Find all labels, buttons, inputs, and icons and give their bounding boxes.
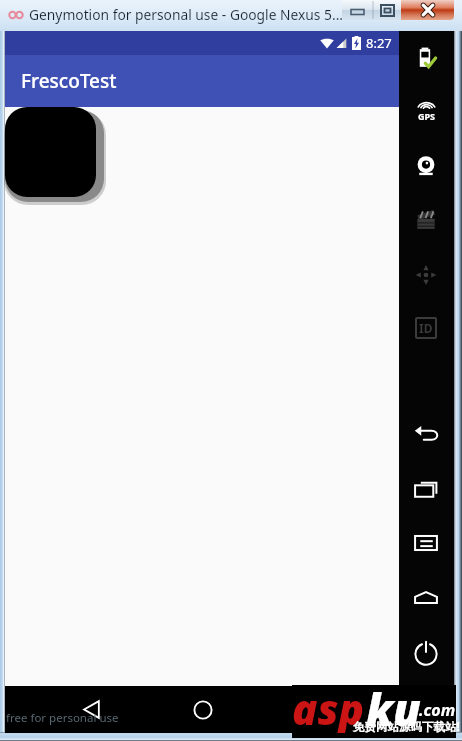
button[interactable]: Power <box>399 626 453 680</box>
staticText: 8:27 <box>366 34 392 52</box>
button[interactable]: Home <box>173 686 233 733</box>
button[interactable]: Camera <box>399 139 453 193</box>
button[interactable]: Minimize <box>342 0 401 20</box>
staticText: 免费网站源码下载站! <box>353 719 460 735</box>
button[interactable]: Recents <box>283 686 343 733</box>
staticText: ID <box>419 320 433 336</box>
button[interactable]: Accelerometer <box>399 248 453 302</box>
button[interactable]: Maximize <box>373 0 401 20</box>
staticText: Genymotion for personal use - Google Nex… <box>29 5 344 24</box>
button[interactable]: Recent apps <box>399 463 453 517</box>
staticText: .com <box>419 699 456 721</box>
button[interactable]: Menu <box>399 516 453 570</box>
button[interactable]: Back <box>61 686 122 733</box>
staticText: ku <box>366 679 421 732</box>
button[interactable]: Screencast <box>399 193 453 247</box>
button[interactable]: Battery <box>399 31 453 85</box>
button[interactable]: GPS <box>399 83 453 137</box>
button[interactable]: Identifiers <box>399 301 453 355</box>
staticText: GPS <box>418 110 436 122</box>
staticText: free for personal use <box>6 710 119 726</box>
button[interactable]: Close <box>401 0 454 20</box>
button[interactable]: Back <box>399 408 453 462</box>
staticText: asp <box>292 680 365 733</box>
staticText: FrescoTest <box>21 68 117 94</box>
button[interactable]: Home <box>399 571 453 625</box>
